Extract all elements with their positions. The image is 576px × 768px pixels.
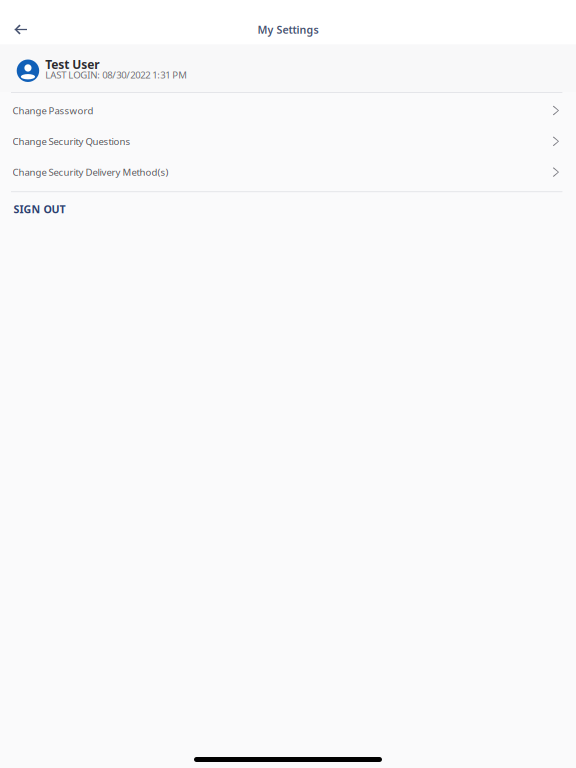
staticText: Change Security Questions bbox=[12, 135, 130, 148]
staticText: LAST LOGIN: 08/30/2022 1:31 PM bbox=[45, 68, 187, 81]
button[interactable]: SIGN OUT bbox=[0, 192, 576, 228]
button[interactable]: Change Security Questions bbox=[0, 124, 576, 155]
staticText: SIGN OUT bbox=[13, 202, 65, 216]
button[interactable]: Change Password bbox=[0, 93, 576, 124]
staticText: Change Security Delivery Method(s) bbox=[12, 166, 168, 179]
staticText: My Settings bbox=[257, 22, 318, 37]
button[interactable]: Back bbox=[0, 9, 41, 50]
button[interactable]: Change Security Delivery Method(s) bbox=[0, 155, 576, 185]
staticText: Change Password bbox=[12, 104, 93, 117]
staticText: Test User bbox=[45, 56, 99, 72]
